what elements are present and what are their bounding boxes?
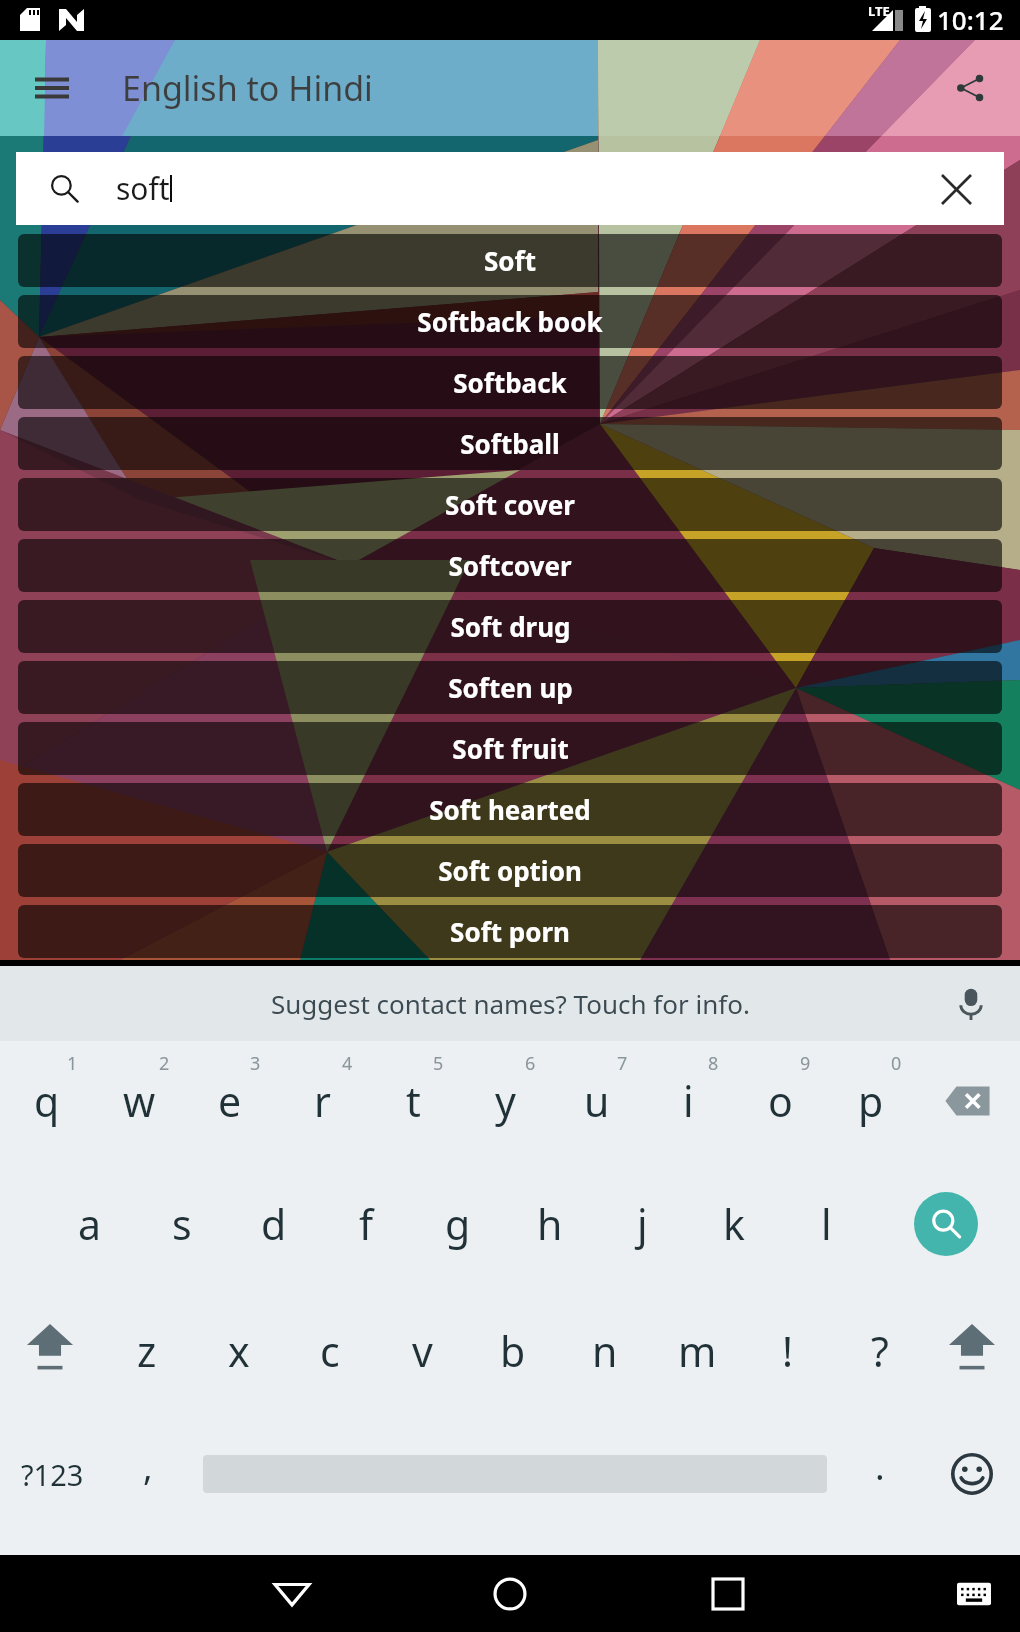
staticText: 9 (800, 1051, 811, 1076)
button[interactable]: . (834, 1420, 926, 1512)
button[interactable]: 0 (850, 1017, 942, 1109)
staticText: a (78, 1196, 102, 1252)
button[interactable]: Soft fruit (18, 722, 1002, 775)
staticText: l (821, 1196, 832, 1252)
button[interactable]: Soft porn (18, 905, 1002, 958)
button[interactable]: 1 (26, 1017, 118, 1109)
button[interactable]: j (596, 1178, 688, 1270)
staticText: p (858, 1073, 884, 1129)
button[interactable]: q (1, 1055, 93, 1147)
button[interactable]: l (780, 1178, 872, 1270)
button[interactable]: u (551, 1055, 643, 1147)
button[interactable]: z (101, 1305, 193, 1397)
staticText: 6 (525, 1051, 536, 1076)
button[interactable]: 3 (209, 1017, 301, 1109)
staticText: Soft hearted (429, 792, 591, 827)
staticText: , (143, 1442, 153, 1491)
button[interactable]: y (459, 1055, 551, 1147)
button[interactable]: g (412, 1178, 504, 1270)
button[interactable]: Soft cover (18, 478, 1002, 531)
staticText: 10:12 (937, 2, 1004, 37)
staticText: Softback (453, 365, 567, 400)
staticText: f (359, 1196, 374, 1252)
staticText: r (314, 1073, 331, 1129)
staticText: w (123, 1073, 156, 1129)
button[interactable]: b (467, 1305, 559, 1397)
button[interactable]: 6 (484, 1017, 576, 1109)
staticText: s (172, 1196, 192, 1252)
staticText: 7 (617, 1051, 628, 1076)
button[interactable]: n (559, 1305, 651, 1397)
staticText: n (592, 1323, 618, 1379)
button[interactable]: Softback (18, 356, 1002, 409)
button[interactable]: Backspace (921, 1055, 1013, 1147)
button[interactable]: Soften up (18, 661, 1002, 714)
button[interactable]: 2 (118, 1017, 210, 1109)
button[interactable]: ! (742, 1305, 834, 1397)
staticText: LTE (868, 2, 890, 20)
button[interactable]: soft (16, 152, 1004, 225)
staticText: ? (871, 1323, 889, 1379)
staticText: 1 (67, 1051, 78, 1076)
button[interactable]: 7 (576, 1017, 668, 1109)
button[interactable]: Back (246, 1555, 338, 1632)
button[interactable]: Clear query (930, 163, 982, 215)
button[interactable]: Shift (4, 1301, 96, 1393)
button[interactable]: c (284, 1305, 376, 1397)
button[interactable]: ? (834, 1305, 926, 1397)
button[interactable]: m (651, 1305, 743, 1397)
staticText: Softcover (448, 548, 572, 583)
staticText: Soft fruit (452, 731, 569, 766)
button[interactable]: Home (464, 1555, 556, 1632)
staticText: Suggest contact names? Touch for info. (271, 986, 750, 1021)
button[interactable]: k (688, 1178, 780, 1270)
button[interactable]: ?123 (6, 1428, 98, 1520)
button[interactable]: d (228, 1178, 320, 1270)
button[interactable]: Open navigation drawer (24, 60, 80, 116)
button[interactable]: v (376, 1305, 468, 1397)
button[interactable]: Voice input (946, 979, 996, 1029)
button[interactable]: i (642, 1055, 734, 1147)
staticText: Softball (460, 426, 560, 461)
button[interactable]: Softball (18, 417, 1002, 470)
staticText: ! (782, 1323, 794, 1379)
button[interactable]: Soft hearted (18, 783, 1002, 836)
button[interactable]: Soft (18, 234, 1002, 287)
button[interactable]: Recents (682, 1555, 774, 1632)
button[interactable]: h (504, 1178, 596, 1270)
staticText: u (584, 1073, 610, 1129)
button[interactable]: 8 (667, 1017, 759, 1109)
button[interactable]: Softback book (18, 295, 1002, 348)
button[interactable]: p (825, 1055, 917, 1147)
button[interactable]: Shift (926, 1301, 1018, 1393)
button[interactable]: r (276, 1055, 368, 1147)
button[interactable]: , (102, 1420, 194, 1512)
button[interactable]: 4 (301, 1017, 393, 1109)
button[interactable]: 9 (759, 1017, 851, 1109)
button[interactable]: t (367, 1055, 459, 1147)
button[interactable]: s (136, 1178, 228, 1270)
staticText: Soft cover (445, 487, 575, 522)
button[interactable]: Share (942, 60, 998, 116)
button[interactable]: Soft option (18, 844, 1002, 897)
button[interactable]: 5 (392, 1017, 484, 1109)
button[interactable]: f (320, 1178, 412, 1270)
button[interactable]: Emoji (926, 1428, 1018, 1520)
button[interactable]: a (44, 1178, 136, 1270)
staticText: 5 (433, 1051, 444, 1076)
staticText: o (768, 1073, 793, 1129)
staticText: Softback book (417, 304, 603, 339)
staticText: g (445, 1196, 471, 1252)
button[interactable]: Search (914, 1192, 978, 1256)
button[interactable]: Softcover (18, 539, 1002, 592)
button[interactable]: e (184, 1055, 276, 1147)
staticText: 8 (708, 1051, 719, 1076)
button[interactable]: Soft drug (18, 600, 1002, 653)
button[interactable]: w (93, 1055, 185, 1147)
button[interactable]: Switch keyboard (944, 1564, 1004, 1624)
staticText: h (537, 1196, 563, 1252)
button[interactable]: x (193, 1305, 285, 1397)
button[interactable]: o (734, 1055, 826, 1147)
staticText: 4 (342, 1051, 353, 1076)
